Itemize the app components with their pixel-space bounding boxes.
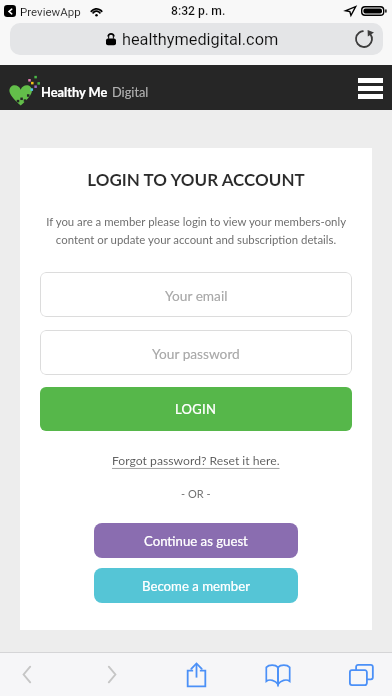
button[interactable]: Share — [170, 653, 222, 696]
staticText: Your email — [165, 287, 228, 303]
button[interactable]: Healthy Me — [9, 77, 149, 106]
button[interactable]: LOGIN — [40, 387, 352, 431]
button[interactable]: Reload — [348, 23, 380, 55]
staticText: Your password — [152, 345, 240, 361]
staticText: LOGIN — [175, 401, 217, 417]
staticText: Continue as guest — [144, 533, 248, 549]
button[interactable]: Continue as guest — [94, 523, 298, 558]
staticText: Healthy Me — [41, 84, 108, 99]
button[interactable]: Your email — [40, 272, 352, 317]
button[interactable]: Menu — [352, 70, 388, 106]
staticText: LOGIN TO YOUR ACCOUNT — [87, 169, 305, 189]
button[interactable]: Back — [1, 653, 53, 696]
staticText: 8:32 p. m. — [171, 4, 226, 18]
button[interactable]: Back to PreviewApp — [4, 5, 16, 17]
button[interactable]: Your password — [40, 330, 352, 375]
staticText: PreviewApp — [20, 5, 81, 18]
staticText: If you are a member please login to view… — [44, 215, 348, 246]
button[interactable]: Forgot password? Reset it here. — [112, 453, 280, 468]
button[interactable]: Tabs — [335, 653, 387, 696]
button[interactable]: Forward — [86, 653, 138, 696]
staticText: - OR - — [181, 487, 211, 500]
staticText: healthymedigital.com — [122, 30, 279, 49]
staticText: Digital — [112, 84, 149, 99]
staticText: Become a member — [142, 578, 250, 594]
button[interactable]: healthymedigital.com — [10, 23, 383, 55]
button[interactable]: Bookmarks — [252, 653, 304, 696]
staticText: Forgot password? Reset it here. — [112, 453, 280, 468]
button[interactable]: Become a member — [94, 568, 298, 603]
